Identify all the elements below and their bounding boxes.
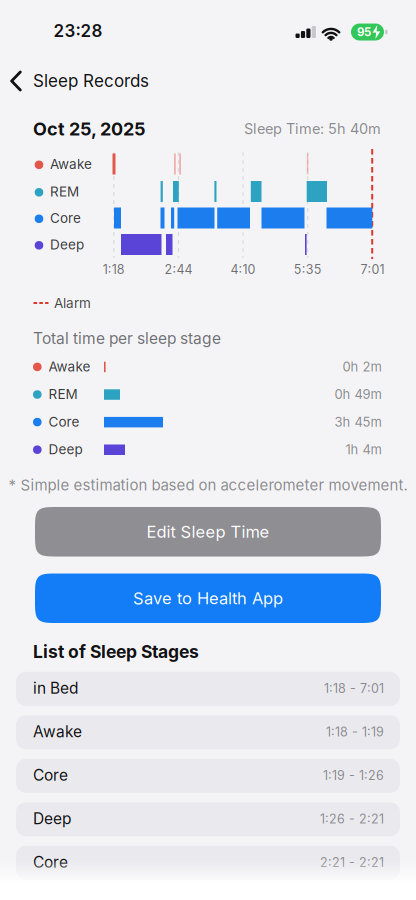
- staticText: 2:21 - 2:21: [320, 855, 384, 870]
- staticText: List of Sleep Stages: [33, 641, 199, 662]
- staticText: 0h 49m: [334, 386, 381, 402]
- staticText: Deep: [33, 809, 71, 828]
- button[interactable]: Save to Health App: [35, 573, 381, 623]
- staticText: Oct 25, 2025: [33, 118, 146, 140]
- button[interactable]: Back: [11, 64, 161, 95]
- staticText: 1:18: [103, 262, 125, 277]
- staticText: Sleep Time: 5h 40m: [244, 120, 381, 137]
- staticText: * Simple estimation based on acceleromet…: [8, 476, 407, 494]
- staticText: in Bed: [33, 679, 78, 698]
- staticText: 3h 45m: [334, 414, 381, 430]
- staticText: Deep: [48, 441, 82, 457]
- staticText: Awake: [33, 722, 82, 741]
- staticText: 2:44: [164, 262, 192, 277]
- staticText: REM: [48, 386, 77, 402]
- staticText: 1:18 - 1:19: [326, 724, 384, 739]
- staticText: Awake: [48, 358, 90, 375]
- staticText: Core: [33, 766, 68, 785]
- staticText: Awake: [50, 156, 92, 172]
- staticText: REM: [50, 183, 79, 200]
- staticText: Edit Sleep Time: [146, 522, 269, 542]
- staticText: 23:28: [53, 20, 102, 41]
- staticText: 7:01: [360, 262, 384, 277]
- staticText: 5:35: [294, 262, 322, 277]
- staticText: Core: [33, 853, 68, 872]
- staticText: 95: [357, 25, 371, 39]
- staticText: 1:18 - 7:01: [324, 681, 384, 696]
- staticText: 4:10: [231, 262, 256, 277]
- staticText: Core: [48, 414, 79, 430]
- staticText: 1:26 - 2:21: [320, 811, 384, 826]
- staticText: Total time per sleep stage: [33, 329, 221, 348]
- staticText: 1h 4m: [345, 442, 381, 457]
- staticText: Alarm: [54, 295, 91, 311]
- staticText: Core: [50, 210, 81, 226]
- staticText: Sleep Records: [33, 70, 149, 91]
- staticText: 0h 2m: [342, 359, 381, 375]
- staticText: Save to Health App: [133, 588, 283, 608]
- staticText: 1:19 - 1:26: [323, 768, 384, 783]
- staticText: Deep: [50, 236, 84, 253]
- button[interactable]: Edit Sleep Time: [35, 507, 381, 556]
